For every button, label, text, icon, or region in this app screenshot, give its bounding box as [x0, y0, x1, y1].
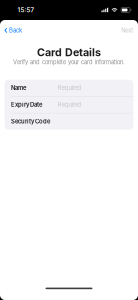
- button[interactable]: Next: [117, 24, 138, 36]
- button[interactable]: Back: [0, 24, 26, 36]
- staticText: Required: [57, 101, 81, 108]
- staticText: Name: [11, 84, 26, 91]
- staticText: Verify and complete your card informatio…: [13, 59, 125, 66]
- staticText: Back: [9, 27, 22, 34]
- button[interactable]: Expiry Date: [5, 96, 133, 113]
- button[interactable]: Name: [5, 80, 133, 96]
- staticText: 15:57: [17, 6, 34, 14]
- staticText: Security Code: [11, 118, 50, 125]
- staticText: Card Details: [37, 46, 101, 59]
- button[interactable]: Security Code: [5, 113, 133, 130]
- staticText: Required: [57, 84, 81, 91]
- staticText: Next: [121, 27, 133, 34]
- staticText: Expiry Date: [11, 101, 42, 108]
